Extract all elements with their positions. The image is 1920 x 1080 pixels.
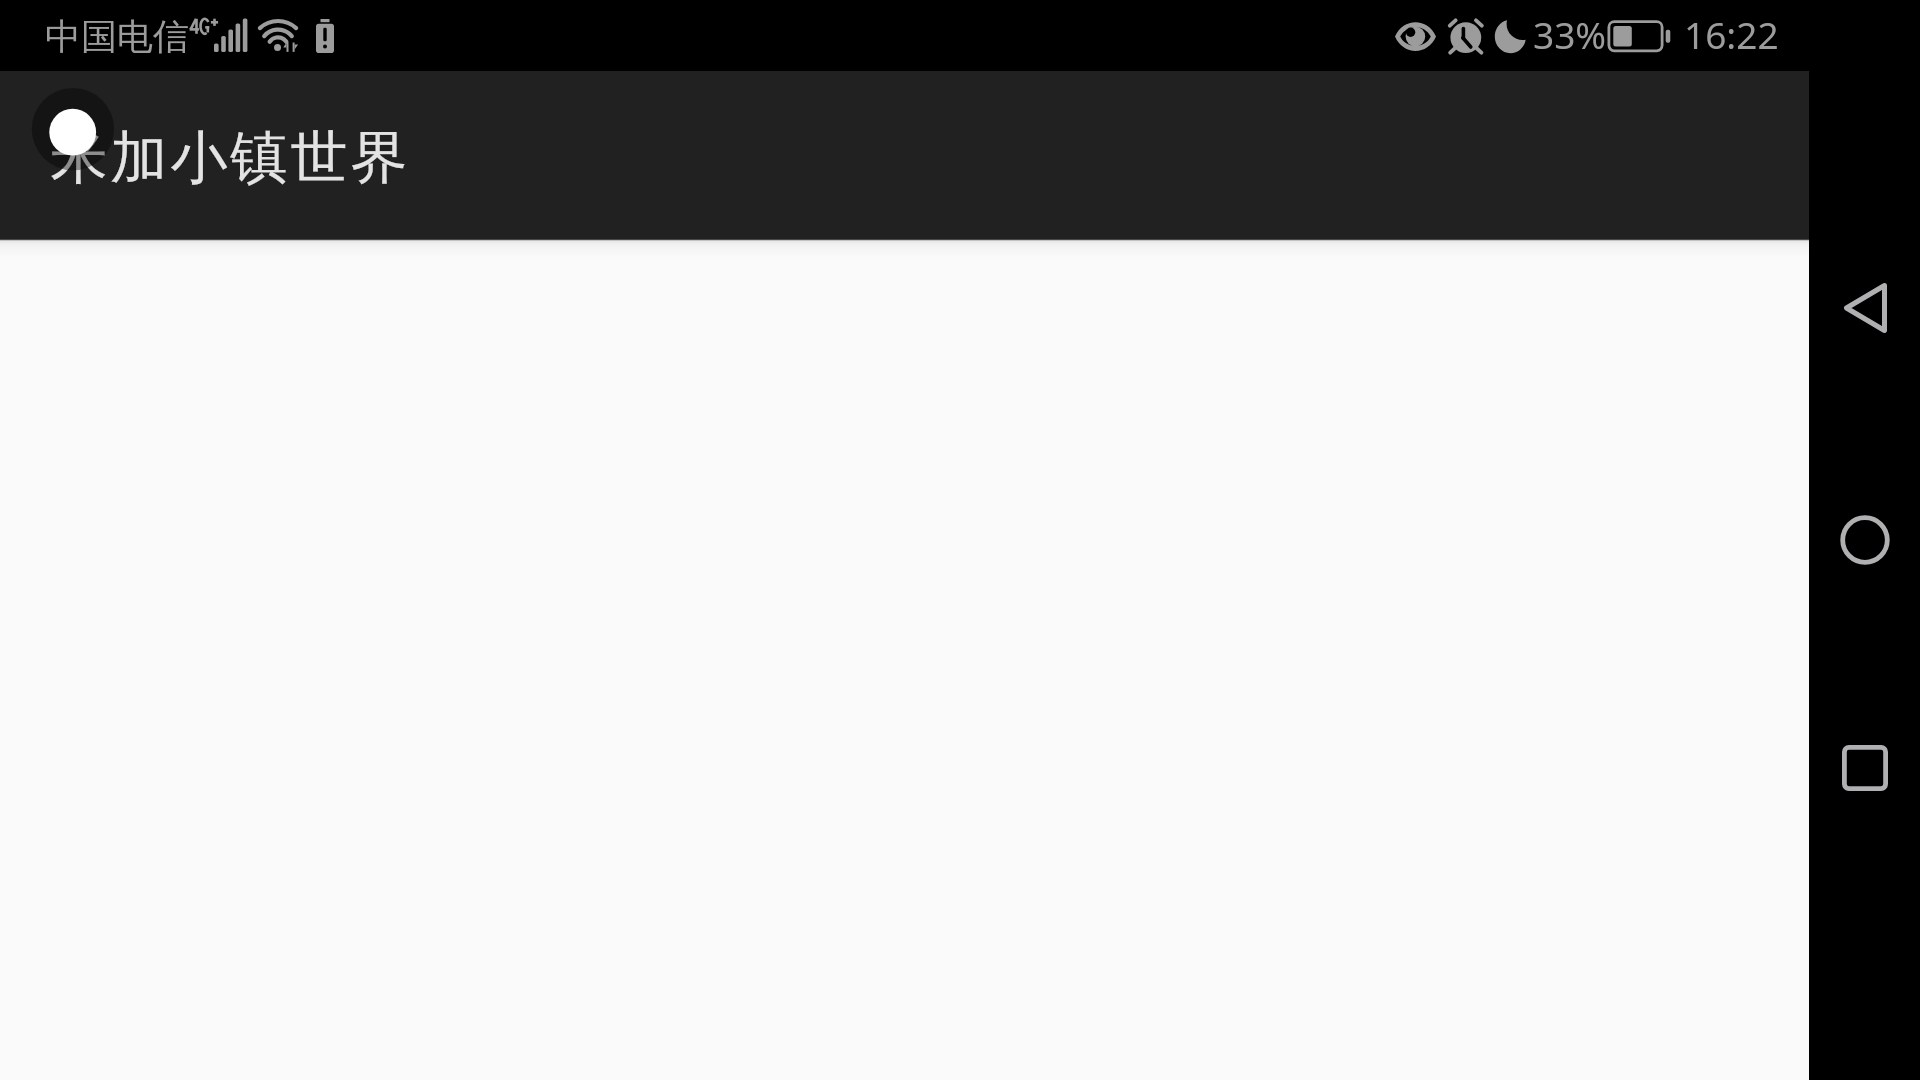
- button[interactable]: Back: [1820, 263, 1910, 353]
- staticText: 33%: [1533, 9, 1607, 59]
- button[interactable]: Recent apps: [1820, 723, 1910, 813]
- staticText: 中国电信: [45, 14, 189, 59]
- staticText: 米加小镇世界: [49, 122, 409, 194]
- button[interactable]: Home: [1820, 495, 1910, 585]
- staticText: 16:22: [1684, 9, 1779, 59]
